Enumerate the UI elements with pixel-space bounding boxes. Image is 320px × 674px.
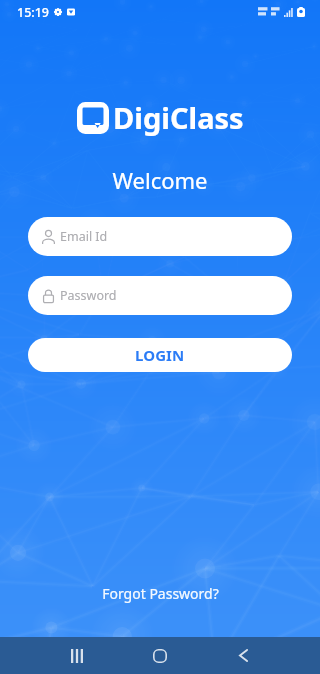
button[interactable]: Home <box>132 637 188 674</box>
button[interactable]: Password <box>28 276 292 315</box>
button[interactable]: Forgot Password? <box>94 580 227 607</box>
button[interactable]: Recent apps <box>49 637 105 674</box>
button[interactable]: Back <box>215 637 271 674</box>
button[interactable]: Email Id <box>28 217 292 256</box>
button[interactable]: LOGIN <box>28 338 292 372</box>
staticText: 15:19 <box>17 4 50 21</box>
staticText: Password <box>60 287 117 304</box>
staticText: Email Id <box>60 228 108 245</box>
staticText: LOGIN <box>135 345 185 365</box>
staticText: Welcome <box>0 165 320 195</box>
staticText: DigiClass <box>113 98 244 137</box>
